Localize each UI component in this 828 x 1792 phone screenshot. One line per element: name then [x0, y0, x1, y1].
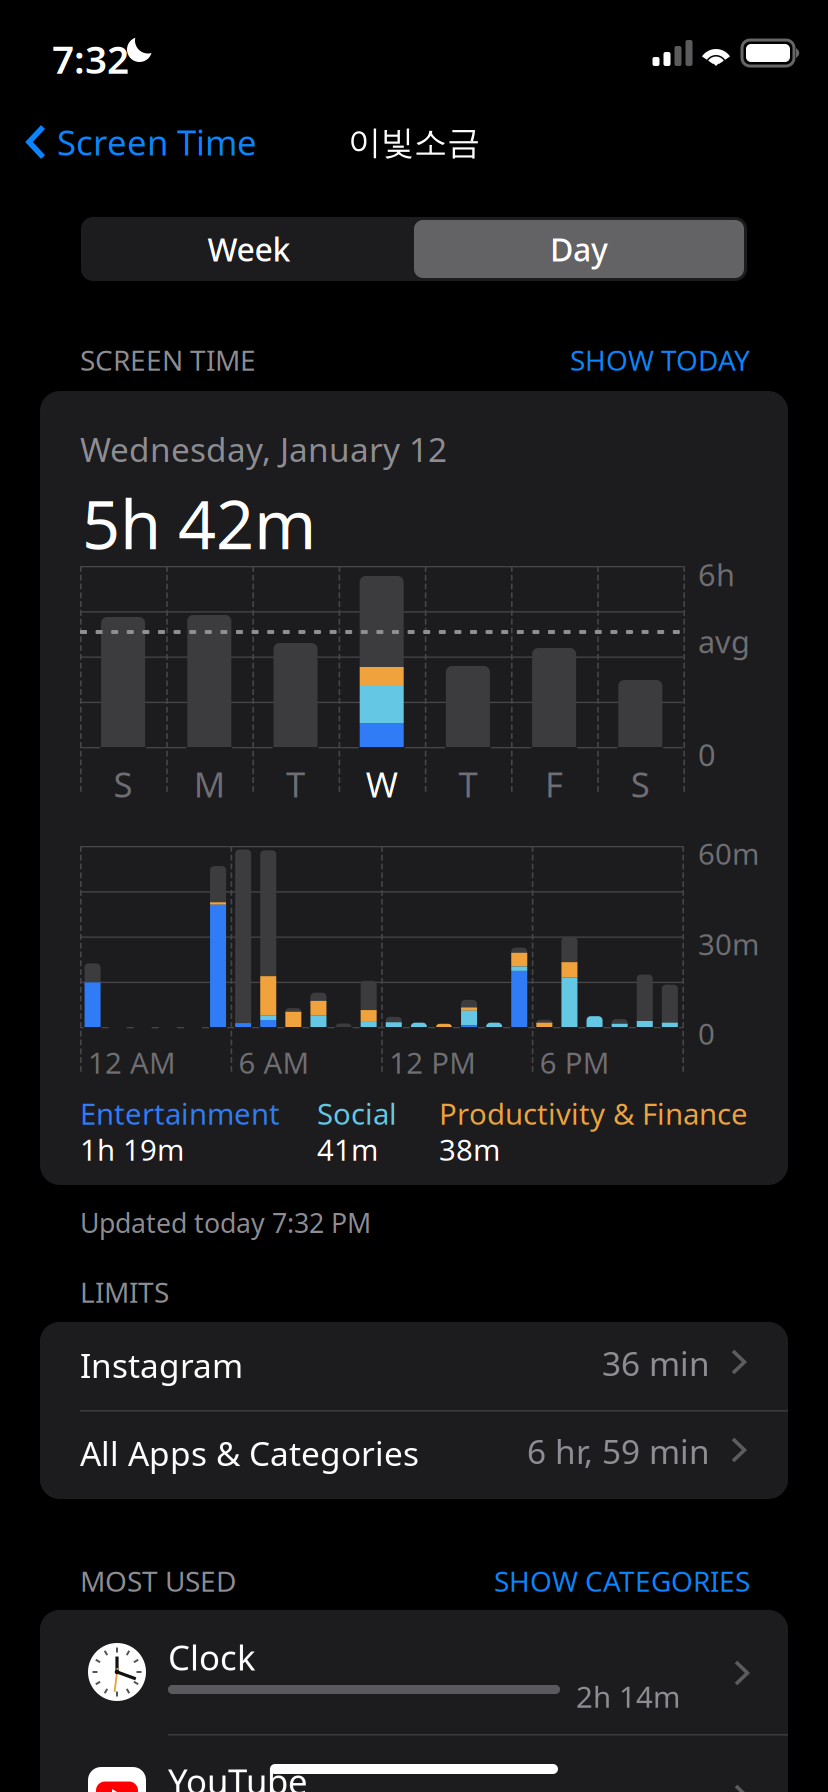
staticText: 6 hr, 59 min — [527, 1429, 710, 1473]
button[interactable]: Day — [414, 220, 744, 278]
staticText: LIMITS — [80, 1273, 169, 1311]
button[interactable]: Screen Time — [17, 111, 265, 173]
staticText: 0 — [698, 734, 716, 775]
staticText: Wednesday, January 12 — [80, 427, 447, 471]
staticText: SHOW TODAY — [570, 341, 750, 379]
staticText: 이빛소금 — [348, 122, 480, 163]
staticText: 2h 14m — [576, 1677, 680, 1716]
staticText: 6 PM — [540, 1043, 610, 1082]
staticText: Instagram — [80, 1343, 243, 1387]
staticText: SCREEN TIME — [80, 341, 256, 379]
staticText: avg — [698, 621, 750, 662]
button[interactable]: SHOW TODAY — [570, 341, 750, 379]
button[interactable]: Week — [84, 220, 414, 278]
staticText: 7:32 — [52, 33, 129, 84]
staticText: 6 AM — [239, 1043, 310, 1082]
staticText: 60m — [698, 834, 759, 873]
staticText: M — [194, 761, 225, 807]
staticText: 30m — [698, 924, 759, 963]
staticText: 38m — [439, 1130, 500, 1169]
staticText: 1h 19m — [80, 1130, 184, 1169]
staticText: 12 PM — [389, 1043, 476, 1082]
staticText: Updated today 7:32 PM — [80, 1205, 371, 1240]
staticText: Screen Time — [57, 119, 257, 165]
staticText: T — [458, 761, 477, 807]
button[interactable]: All Apps & Categories — [40, 1410, 788, 1498]
staticText: 36 min — [602, 1341, 710, 1385]
staticText: Week — [207, 228, 290, 270]
staticText: T — [286, 761, 305, 807]
staticText: F — [545, 761, 563, 807]
staticText: MOST USED — [80, 1562, 236, 1600]
staticText: Clock — [168, 1634, 256, 1680]
staticText: S — [114, 761, 133, 807]
staticText: YouTube — [168, 1758, 308, 1792]
staticText: W — [366, 761, 398, 807]
staticText: Day — [550, 228, 608, 270]
staticText: Entertainment — [80, 1094, 280, 1133]
staticText: Social — [317, 1094, 397, 1133]
staticText: 5h 42m — [82, 479, 316, 567]
staticText: 6h — [698, 554, 735, 595]
staticText: All Apps & Categories — [80, 1431, 419, 1475]
staticText: 41m — [317, 1130, 378, 1169]
button[interactable]: Instagram — [40, 1322, 788, 1410]
staticText: S — [631, 761, 650, 807]
button[interactable]: Clock — [40, 1610, 788, 1734]
button[interactable]: YouTube — [40, 1734, 788, 1792]
button[interactable]: SHOW CATEGORIES — [494, 1562, 750, 1600]
staticText: SHOW CATEGORIES — [494, 1562, 750, 1600]
staticText: 12 AM — [88, 1043, 176, 1082]
staticText: Productivity & Finance — [439, 1094, 748, 1133]
staticText: 0 — [698, 1014, 715, 1053]
